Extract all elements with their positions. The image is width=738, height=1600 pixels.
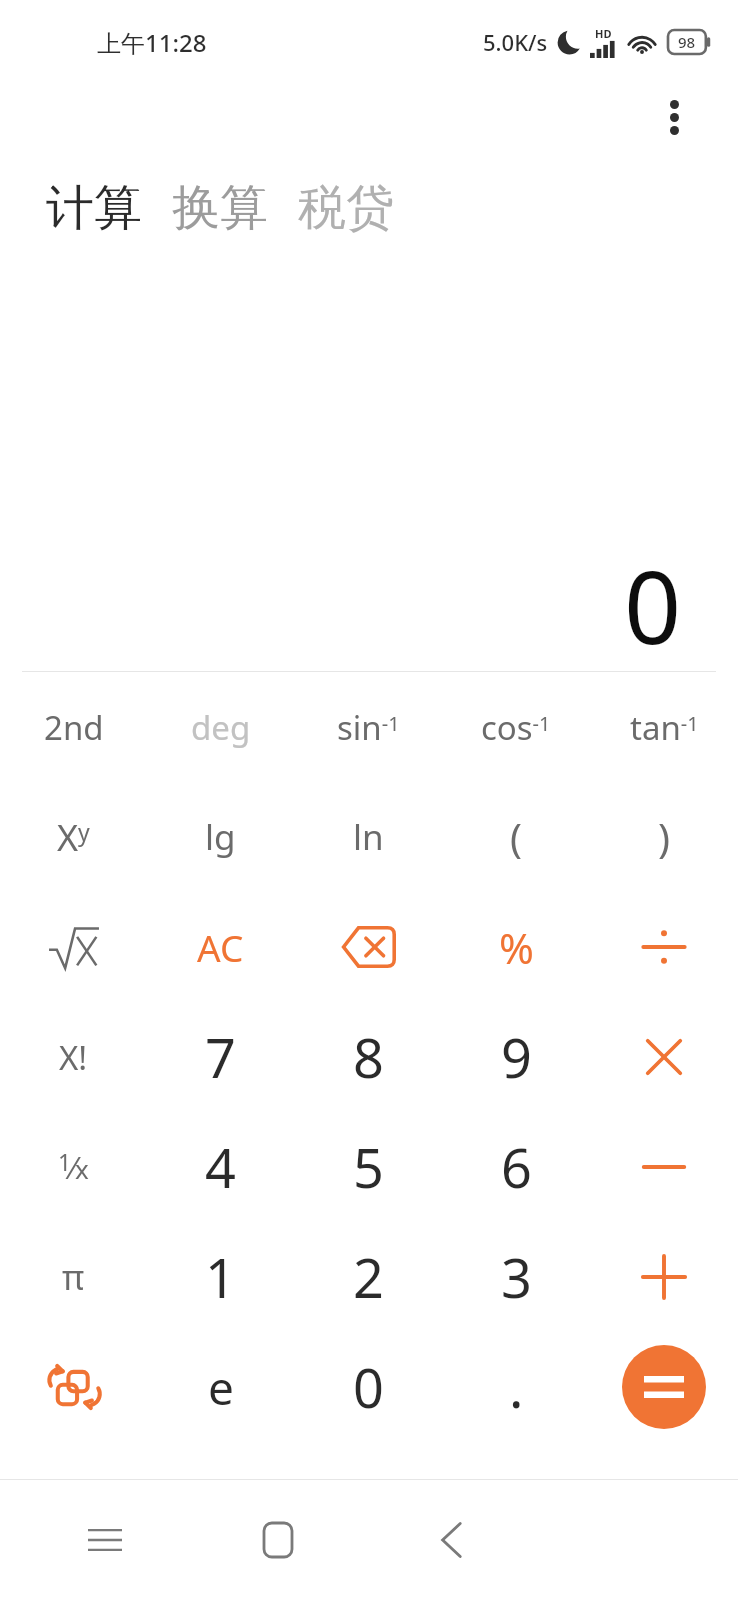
button[interactable]: Equals [590,1332,738,1442]
button[interactable]: π [0,1222,147,1332]
button[interactable]: Back [409,1498,493,1582]
button[interactable]: 9 [442,1002,590,1112]
staticText: π [62,1254,85,1300]
staticText: 4 [205,1130,236,1204]
button[interactable]: AC [147,892,294,1002]
staticText: cos-1 [481,705,551,750]
button[interactable]: 0 [294,1332,442,1442]
button[interactable]: Minus [590,1112,738,1222]
button[interactable]: Switch mode [0,1332,147,1442]
button[interactable]: 税贷 [296,174,396,242]
button[interactable]: ( [442,782,590,892]
button[interactable]: 4 [147,1112,294,1222]
button[interactable]: . [442,1332,590,1442]
staticText: AC [197,922,244,972]
staticText: 3 [501,1240,532,1314]
staticText: 0 [353,1350,384,1424]
button[interactable]: % [442,892,590,1002]
staticText: 8 [353,1020,384,1094]
staticText: 6 [501,1130,532,1204]
button[interactable]: Backspace [294,892,442,1002]
button[interactable]: 1⁄x [0,1112,147,1222]
staticText: e [208,1356,234,1419]
button[interactable]: 换算 [170,174,270,242]
staticText: 0 [624,537,682,657]
button[interactable]: 2 [294,1222,442,1332]
button[interactable]: Recent apps [63,1498,147,1582]
button[interactable]: Divide [590,892,738,1002]
button[interactable]: 7 [147,1002,294,1112]
button[interactable]: 6 [442,1112,590,1222]
staticText: Xy [57,813,90,862]
button[interactable]: ) [590,782,738,892]
staticText: 2nd [44,705,104,750]
button[interactable]: Square root [0,892,147,1002]
button[interactable]: lg [147,782,294,892]
staticText: 5.0K/s [483,27,548,57]
button[interactable]: 1 [147,1222,294,1332]
staticText: 2 [353,1240,384,1314]
button[interactable]: 5 [294,1112,442,1222]
button[interactable]: X! [0,1002,147,1112]
staticText: 换算 [172,178,268,238]
button[interactable]: 3 [442,1222,590,1332]
staticText: % [499,919,534,976]
button[interactable]: deg [147,672,294,782]
staticText: ) [658,810,670,864]
staticText: sin-1 [337,705,400,750]
staticText: 1 [205,1240,236,1314]
button[interactable]: e [147,1332,294,1442]
button[interactable]: 计算 [44,174,144,242]
button[interactable]: sin-1 [294,672,442,782]
staticText: 税贷 [298,178,394,238]
button[interactable]: Multiply [590,1002,738,1112]
staticText: . [509,1350,524,1424]
staticText: 计算 [46,178,142,238]
button[interactable]: Home [236,1498,320,1582]
staticText: tan-1 [630,705,699,750]
button[interactable]: cos-1 [442,672,590,782]
staticText: 98 [678,32,696,52]
staticText: 1⁄x [58,1146,89,1188]
button[interactable]: ln [294,782,442,892]
button[interactable]: 2nd [0,672,147,782]
staticText: 7 [205,1020,236,1094]
button[interactable]: 8 [294,1002,442,1112]
staticText: HD [595,26,612,41]
staticText: deg [191,705,251,750]
staticText: ( [510,810,522,864]
staticText: lg [205,813,236,861]
staticText: ln [353,813,384,861]
staticText: 5 [353,1130,384,1204]
staticText: 上午11:28 [97,26,207,59]
button[interactable]: Plus [590,1222,738,1332]
button[interactable]: tan-1 [590,672,738,782]
button[interactable]: Xy [0,782,147,892]
button[interactable]: More options [650,93,698,141]
staticText: 9 [501,1020,532,1094]
staticText: X! [59,1035,88,1080]
